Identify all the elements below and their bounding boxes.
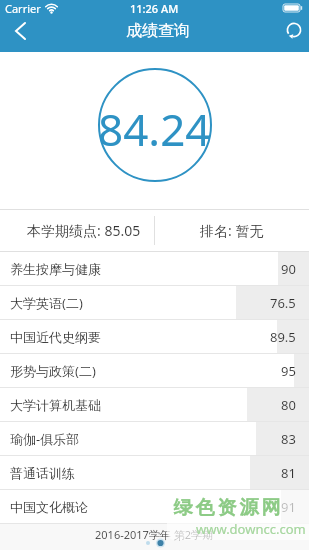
staticText: 形势与政策(二) (10, 362, 96, 380)
button[interactable]: 中国近代史纲要 (0, 320, 309, 354)
staticText: 84.24 (98, 99, 211, 159)
staticText: 中国文化概论 (10, 499, 88, 515)
staticText: 排名: 暂无 (200, 221, 264, 240)
button[interactable]: 2016-2017学年 第2学期 (0, 524, 309, 550)
staticText: www.downcc.com (196, 520, 306, 538)
button[interactable]: 形势与政策(二) (0, 354, 309, 388)
button[interactable]: 排名: 暂无 (155, 210, 309, 251)
button[interactable] (271, 16, 309, 46)
staticText: 11:26 AM (130, 1, 179, 16)
staticText: Carrier (5, 1, 41, 16)
staticText: 瑜伽-俱乐部 (10, 430, 80, 448)
staticText: 2016-2017学年 第2学期 (95, 527, 214, 542)
staticText: 中国近代史纲要 (10, 329, 101, 345)
staticText: 80 (281, 396, 296, 414)
staticText: 90 (281, 260, 296, 278)
button[interactable]: 大学英语(二) (0, 286, 309, 320)
staticText: 普通话训练 (10, 465, 75, 481)
button[interactable]: 大学计算机基础 (0, 388, 309, 422)
staticText: 91 (281, 498, 296, 516)
staticText: 养生按摩与健康 (10, 261, 101, 277)
staticText: 81 (281, 464, 296, 482)
staticText: 95 (281, 362, 296, 380)
button[interactable]: 中国文化概论 (0, 490, 309, 524)
button[interactable]: 瑜伽-俱乐部 (0, 422, 309, 456)
staticText: 绿色资源网 (172, 496, 282, 520)
staticText: 83 (281, 430, 296, 448)
button[interactable]: 本学期绩点: 85.05 (0, 210, 154, 251)
button[interactable]: 普通话训练 (0, 456, 309, 490)
button[interactable] (0, 16, 40, 46)
staticText: 76.5 (270, 294, 296, 312)
staticText: 大学英语(二) (10, 294, 83, 312)
staticText: 成绩查询 (126, 21, 190, 41)
staticText: 89.5 (270, 328, 296, 346)
button[interactable]: 养生按摩与健康 (0, 252, 309, 286)
staticText: 大学计算机基础 (10, 397, 101, 413)
staticText: 本学期绩点: 85.05 (27, 221, 141, 240)
